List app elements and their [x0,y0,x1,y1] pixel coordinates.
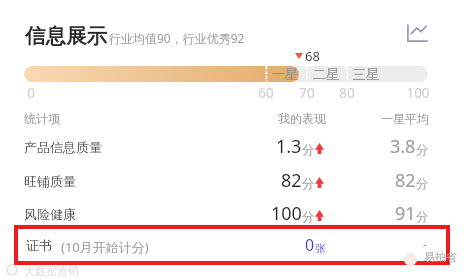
staticText: - [423,236,427,252]
staticText: 分 [302,209,315,225]
staticText: 张 [315,241,326,255]
staticText: 信息展示 [25,23,107,49]
staticText: 行业均值90，行业优秀92 [109,30,245,46]
staticText: 82 [281,168,302,193]
staticText: 一星平均 [381,111,429,126]
staticText: 分 [302,142,315,158]
staticText: (10月开始计分) [61,238,149,256]
staticText: 三星 [351,66,381,83]
staticText: 1.3 [276,134,302,159]
staticText: 统计项 [24,111,60,126]
staticText: 二星 [311,66,341,83]
staticText: 100 [271,201,302,226]
staticText: 60 [251,84,281,102]
staticText: 68 [305,47,320,65]
staticText: 易拍省 [424,250,457,264]
staticText: 分 [416,209,429,225]
staticText: 产品信息质量 [24,139,102,155]
staticText: 一星 [270,66,300,83]
staticText: 100 [403,84,433,102]
staticText: 风险健康 [24,206,76,222]
staticText: 我的表现 [278,111,326,126]
staticText: 证书 [26,237,52,253]
staticText: 分 [302,176,315,192]
staticText: 0 [305,234,315,256]
staticText: 91 [395,201,416,226]
staticText: 分 [416,176,429,192]
staticText: 3.8 [390,134,416,159]
staticText: 0 [16,84,46,102]
button[interactable]: 趋势图 [400,17,435,49]
staticText: 分 [416,142,429,158]
staticText: 70 [292,84,322,102]
staticText: 大数据营销 [24,264,79,278]
staticText: 80 [332,84,362,102]
button[interactable]: 证书 [18,229,446,261]
staticText: 旺铺质量 [24,173,76,189]
staticText: 82 [395,168,416,193]
